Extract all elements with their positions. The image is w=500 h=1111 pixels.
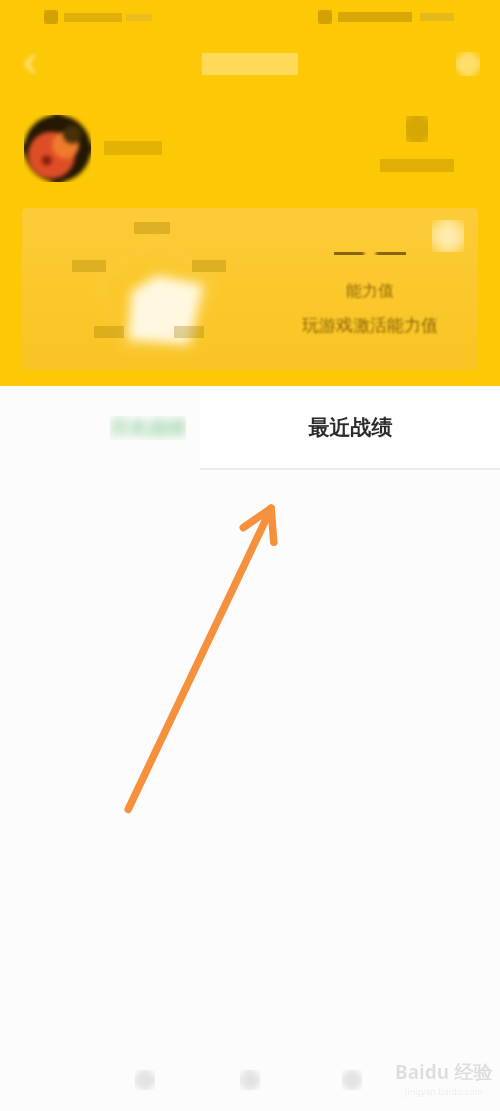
button[interactable]: Share	[446, 42, 490, 86]
button[interactable]: 历史战绩	[76, 397, 220, 459]
staticText: jingyan.baidu.com	[405, 1085, 483, 1097]
staticText: Baidu 经验	[395, 1059, 492, 1085]
button[interactable]: Back	[115, 1052, 175, 1108]
button[interactable]: Settings	[378, 110, 456, 178]
staticText: 能力值	[346, 281, 394, 301]
button[interactable]: Home	[220, 1052, 280, 1108]
staticText: 玩游戏激活能力值	[302, 315, 438, 336]
button[interactable]: 能力值	[22, 208, 478, 370]
staticText: 最近战绩	[308, 415, 392, 441]
button[interactable]: Recents	[322, 1052, 382, 1108]
button[interactable]: 最近战绩	[258, 397, 442, 459]
button[interactable]: Back	[8, 42, 52, 86]
button[interactable]: Avatar	[24, 115, 91, 182]
staticText: 历史战绩	[110, 416, 186, 440]
